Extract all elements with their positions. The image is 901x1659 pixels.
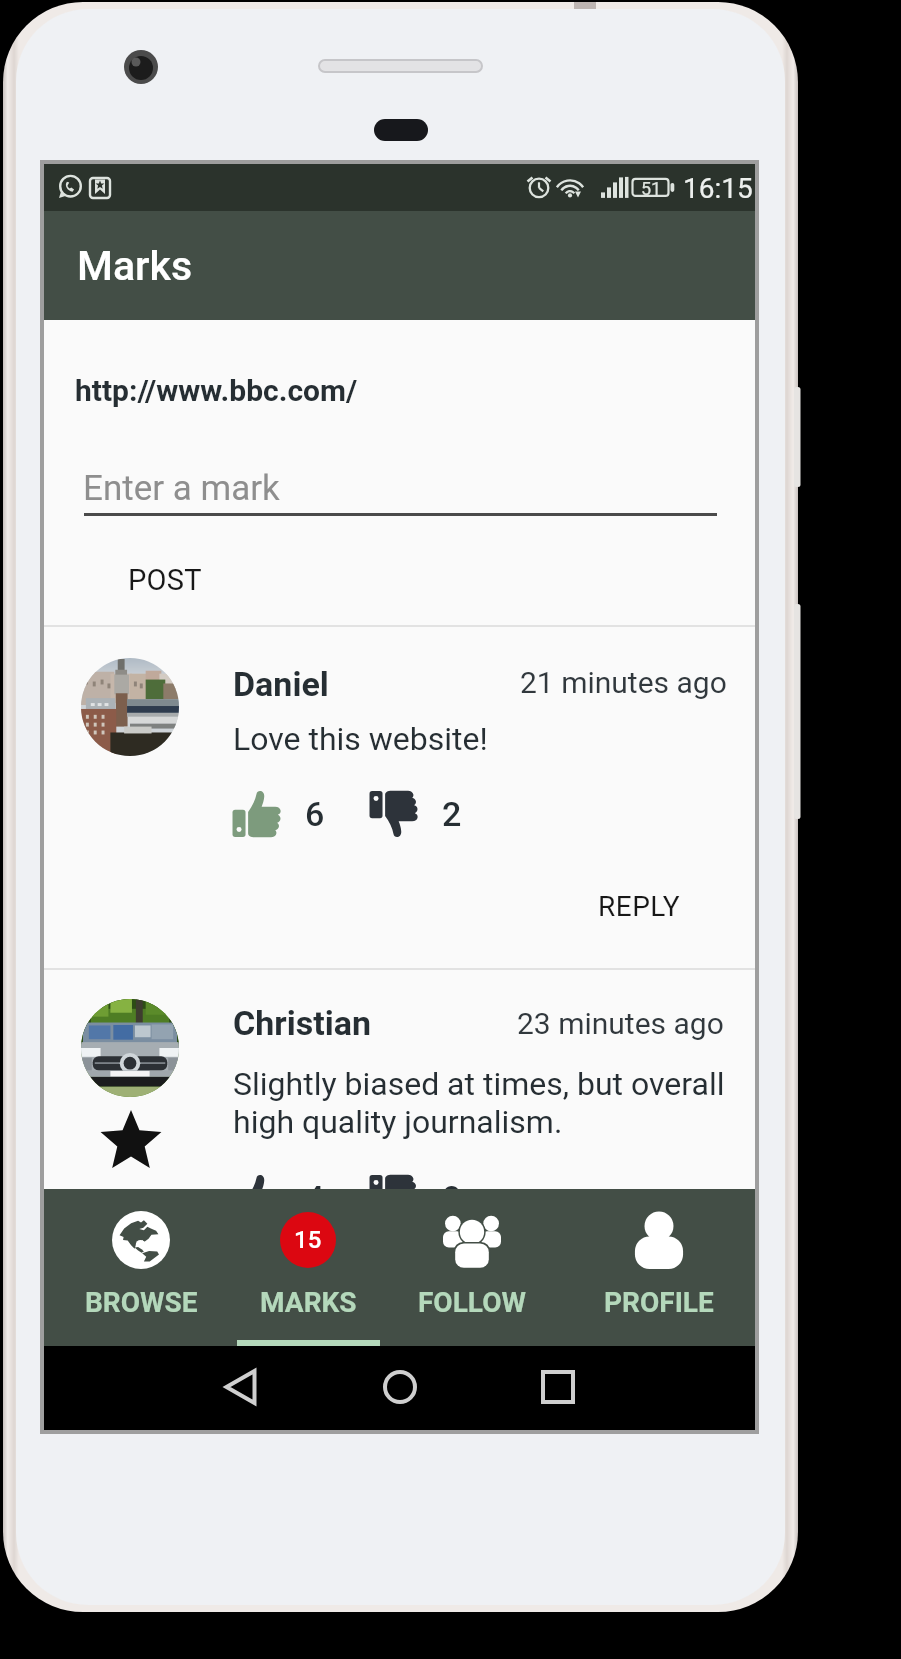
staticText: Slightly biased at times, but overall hi… <box>233 1065 725 1141</box>
staticText: 6 <box>305 794 325 834</box>
button[interactable]: Christian <box>44 970 755 1189</box>
button[interactable]: POST <box>117 554 213 606</box>
button[interactable]: Enter a mark <box>83 468 716 523</box>
button[interactable]: Daniel <box>44 627 755 968</box>
staticText: 16:15 <box>683 172 753 205</box>
staticText: Enter a mark <box>83 468 280 509</box>
staticText: Love this website! <box>233 720 488 758</box>
staticText: http://www.bbc.com/ <box>75 373 358 408</box>
staticText: 4 <box>305 1178 325 1218</box>
staticText: 23 minutes ago <box>517 1006 724 1041</box>
staticText: 2 <box>442 794 462 834</box>
staticText: Daniel <box>233 664 329 704</box>
button[interactable]: BROWSE <box>56 1189 226 1346</box>
button[interactable]: 0 <box>369 1172 462 1224</box>
staticText: POST <box>128 563 202 597</box>
staticText: 51 <box>641 178 662 199</box>
button[interactable]: 15 <box>223 1189 393 1346</box>
staticText: MARKS <box>260 1286 357 1319</box>
button[interactable]: 2 <box>369 788 462 840</box>
button[interactable]: Recents <box>518 1347 598 1427</box>
staticText: FOLLOW <box>418 1286 526 1319</box>
button[interactable]: 4 <box>232 1172 325 1224</box>
staticText: REPLY <box>598 890 680 923</box>
button[interactable]: FOLLOW <box>387 1189 557 1346</box>
button[interactable]: 6 <box>232 788 325 840</box>
staticText: 15 <box>294 1226 322 1254</box>
staticText: Christian <box>233 1003 372 1043</box>
staticText: BROWSE <box>85 1286 198 1319</box>
staticText: PROFILE <box>604 1286 714 1319</box>
button[interactable]: REPLY <box>587 881 691 932</box>
button[interactable]: Home <box>360 1347 440 1427</box>
staticText: 0 <box>442 1178 462 1218</box>
staticText: Marks <box>77 242 193 290</box>
staticText: 21 minutes ago <box>520 665 727 700</box>
button[interactable]: Back <box>201 1347 281 1427</box>
button[interactable]: PROFILE <box>574 1189 744 1346</box>
